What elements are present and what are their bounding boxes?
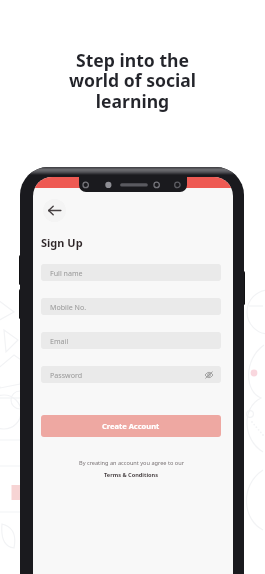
staticText: Sign Up [41,235,83,250]
staticText: Step into the world of social learning [0,48,265,113]
button[interactable]: Back [43,199,66,222]
staticText: Create Account [102,421,160,431]
button[interactable]: Full name [41,264,221,281]
button[interactable]: Terms & Conditions [104,471,159,479]
staticText: Email [50,336,69,346]
staticText: By creating an account you agree to our [79,459,184,467]
button[interactable]: Mobile No. [41,298,221,315]
staticText: Password [50,370,83,380]
button[interactable]: Email [41,332,221,349]
button[interactable]: Create Account [41,415,221,437]
button[interactable]: Password [41,366,221,383]
staticText: Mobile No. [50,302,87,312]
staticText: Full name [50,268,83,278]
other: Show password [205,371,213,379]
